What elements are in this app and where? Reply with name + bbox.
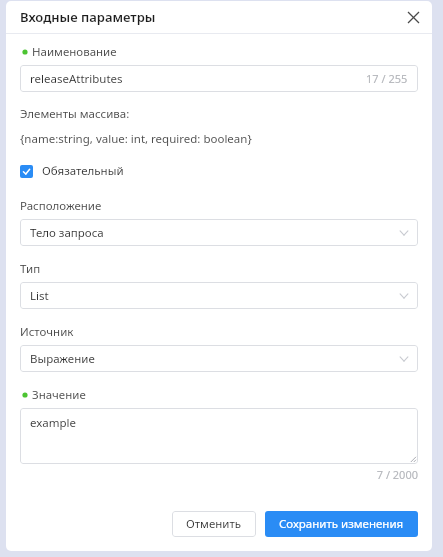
staticText: Отменить [186,516,242,532]
button[interactable]: Тело запроса [20,219,418,246]
button[interactable]: Отменить [172,511,256,537]
staticText: Выражение [30,351,397,367]
button[interactable]: Закрыть [400,4,426,30]
staticText: Обязательный [42,163,124,179]
staticText: releaseAttributes [30,71,366,87]
staticText: example [30,415,77,431]
staticText: Источник [20,324,74,340]
button[interactable]: Сохранить изменения [265,511,418,537]
staticText: {name:string, value: int, required: bool… [20,131,252,147]
button[interactable]: Обязательный [20,161,124,181]
button[interactable]: example [20,408,418,464]
staticText: 7 / 2000 [20,467,418,482]
button[interactable]: releaseAttributes [20,65,418,92]
staticText: 17 / 255 [366,71,408,86]
button[interactable]: Выражение [20,345,418,372]
staticText: Элементы массива: [20,106,130,122]
staticText: Сохранить изменения [279,516,404,532]
staticText: Тело запроса [30,225,397,241]
staticText: Расположение [20,198,102,214]
staticText: List [30,288,397,304]
staticText: Тип [20,261,41,277]
staticText: Значение [32,387,86,403]
staticText: Входные параметры [20,8,156,26]
staticText: Наименование [32,44,117,60]
button[interactable]: List [20,282,418,309]
